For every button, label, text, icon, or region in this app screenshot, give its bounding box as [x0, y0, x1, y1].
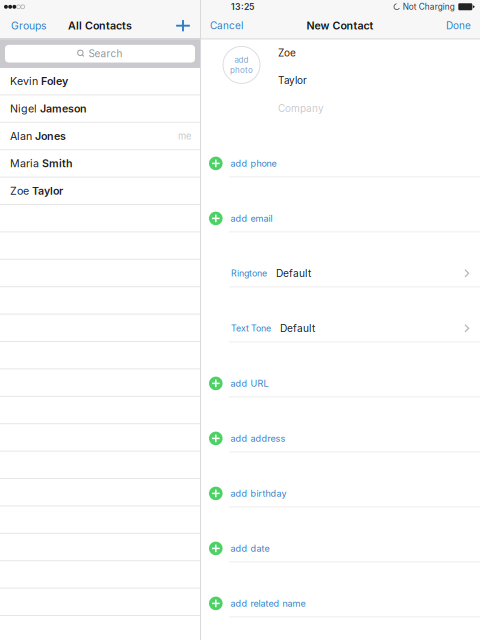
staticText: add email — [231, 213, 273, 224]
button[interactable]: Nigel — [0, 95, 200, 123]
button[interactable]: Text Tone — [201, 287, 480, 342]
button[interactable]: Kevin — [0, 68, 200, 95]
button[interactable]: add phone — [201, 122, 480, 177]
staticText: add address — [231, 433, 286, 444]
staticText: add URL — [231, 378, 269, 389]
staticText: Jones — [35, 129, 66, 142]
staticText: add phone — [231, 158, 277, 169]
button[interactable]: Ringtone — [201, 232, 480, 287]
staticText: Maria — [10, 157, 39, 170]
staticText: Company — [278, 102, 324, 114]
staticText: add — [234, 55, 248, 65]
staticText: Not Charging — [403, 2, 455, 12]
staticText: 13:25 — [231, 1, 254, 12]
staticText: Default — [276, 267, 311, 280]
staticText: add date — [231, 543, 270, 554]
button[interactable]: Zoe — [0, 178, 200, 205]
staticText: Ringtone — [231, 268, 267, 279]
button[interactable]: add birthday — [201, 452, 480, 507]
staticText: New Contact — [306, 19, 373, 32]
button[interactable]: add date — [201, 507, 480, 562]
staticText: Nigel — [10, 102, 37, 115]
staticText: Taylor — [278, 74, 307, 86]
staticText: Zoe — [10, 184, 29, 197]
button[interactable]: add URL — [201, 342, 480, 397]
staticText: Search — [88, 48, 122, 60]
button[interactable]: Search — [0, 39, 200, 68]
staticText: add birthday — [231, 488, 287, 499]
button[interactable]: Add photo — [223, 39, 260, 83]
button[interactable]: Groups — [0, 13, 54, 38]
staticText: Groups — [11, 19, 46, 32]
staticText: Kevin — [10, 75, 38, 88]
staticText: Default — [280, 322, 315, 335]
button[interactable]: Maria — [0, 150, 200, 178]
staticText: Zoe — [278, 47, 296, 59]
button[interactable]: add email — [201, 177, 480, 232]
button[interactable]: Alan — [0, 123, 200, 150]
button[interactable]: Done — [438, 13, 480, 38]
staticText: Taylor — [32, 184, 63, 197]
staticText: Jameson — [40, 102, 87, 115]
staticText: All Contacts — [68, 19, 132, 32]
staticText: Cancel — [210, 20, 243, 32]
staticText: Foley — [41, 75, 68, 88]
staticText: add related name — [231, 598, 306, 609]
staticText: Done — [446, 20, 471, 32]
button[interactable]: add related name — [201, 562, 480, 617]
staticText: Alan — [10, 129, 32, 142]
button[interactable]: add address — [201, 397, 480, 452]
staticText: Text Tone — [231, 323, 271, 334]
staticText: me — [178, 130, 191, 142]
staticText: Smith — [42, 157, 73, 170]
button[interactable]: Cancel — [201, 13, 251, 38]
staticText: photo — [230, 65, 253, 75]
button[interactable]: Add contact — [166, 13, 200, 38]
